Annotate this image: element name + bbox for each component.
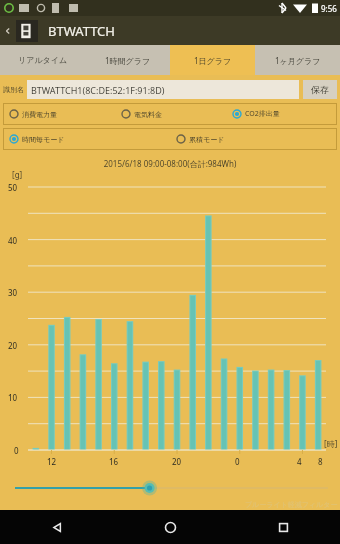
staticText: 累積モード xyxy=(189,135,225,144)
staticText: ブルーライト軽減フィルター xyxy=(245,500,338,509)
button[interactable]: 時間毎モード xyxy=(9,128,170,150)
staticText: 0 xyxy=(235,456,240,467)
staticText: 40 xyxy=(8,235,18,246)
staticText: 電気料金 xyxy=(134,110,162,119)
staticText: 消費電力量 xyxy=(22,110,57,119)
staticText: BTWATTCH1(8C:DE:52:1F:91:8D) xyxy=(31,84,165,96)
button[interactable]: 電気料金 xyxy=(121,103,226,125)
staticText: 保存 xyxy=(311,84,329,95)
staticText: 8 xyxy=(318,456,323,467)
staticText: 10 xyxy=(8,392,18,403)
button[interactable]: 保存 xyxy=(303,80,337,99)
staticText: 20 xyxy=(172,456,182,467)
button[interactable]: Back xyxy=(0,510,114,544)
staticText: CO2排出量 xyxy=(245,109,280,119)
staticText: 1ヶ月グラフ xyxy=(275,55,321,66)
button[interactable]: Recents xyxy=(227,510,340,544)
staticText: 4 xyxy=(297,456,302,467)
staticText: [時] xyxy=(324,438,338,449)
staticText: リアルタイム xyxy=(18,55,68,65)
staticText: BTWATTCH xyxy=(48,22,115,40)
button[interactable]: BTWATTCH1(8C:DE:52:1F:91:8D) xyxy=(27,80,299,99)
staticText: 2015/6/18 09:00-08:00(合計:984Wh) xyxy=(0,158,340,169)
staticText: 12 xyxy=(47,456,57,467)
button[interactable]: 1ヶ月グラフ xyxy=(255,45,340,75)
button[interactable]: Home xyxy=(114,510,227,544)
button[interactable]: 累積モード xyxy=(176,128,337,150)
button[interactable]: CO2排出量 xyxy=(232,103,337,125)
button[interactable] xyxy=(0,478,340,498)
button[interactable]: Back xyxy=(0,16,16,45)
staticText: 9:56 xyxy=(321,3,337,14)
button[interactable]: リアルタイム xyxy=(0,45,85,75)
staticText: 20 xyxy=(8,340,18,351)
staticText: 30 xyxy=(8,287,18,298)
staticText: 1日グラフ xyxy=(194,55,232,66)
button[interactable]: 1時間グラフ xyxy=(85,45,170,75)
button[interactable]: 消費電力量 xyxy=(9,103,115,125)
staticText: 16 xyxy=(109,456,119,467)
staticText: 識別名 xyxy=(3,85,24,94)
button[interactable]: 1日グラフ xyxy=(170,45,255,75)
staticText: 0 xyxy=(14,445,19,456)
staticText: 1時間グラフ xyxy=(105,55,151,66)
staticText: [g] xyxy=(12,169,23,180)
staticText: 50 xyxy=(8,182,18,193)
staticText: 時間毎モード xyxy=(22,135,65,144)
